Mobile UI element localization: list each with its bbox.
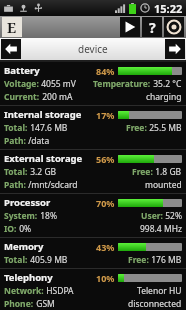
button[interactable]: Battery bbox=[0, 62, 186, 105]
staticText: 10% bbox=[96, 272, 115, 284]
staticText: 405.9 MB bbox=[28, 254, 68, 266]
staticText: Phone: bbox=[4, 298, 34, 308]
staticText: /mnt/sdcard bbox=[26, 179, 78, 191]
button[interactable]: Record bbox=[164, 17, 184, 37]
staticText: 17% bbox=[96, 109, 115, 121]
button[interactable]: Play bbox=[120, 17, 140, 37]
staticText: Total: bbox=[4, 166, 28, 178]
button[interactable]: Internal storage bbox=[0, 106, 186, 149]
button[interactable]: Processor bbox=[0, 194, 186, 237]
staticText: IO: bbox=[4, 223, 17, 235]
staticText: 18% bbox=[38, 210, 57, 222]
staticText: External storage bbox=[4, 152, 83, 165]
staticText: Battery bbox=[4, 64, 40, 77]
staticText: User: bbox=[141, 210, 163, 222]
staticText: Memory bbox=[4, 240, 44, 253]
staticText: 84% bbox=[96, 65, 115, 77]
staticText: Processor bbox=[4, 196, 51, 209]
staticText: 147.6 MB bbox=[28, 122, 68, 134]
staticText: Current: bbox=[4, 91, 40, 103]
staticText: disconnected bbox=[128, 298, 182, 308]
button[interactable]: Memory bbox=[0, 238, 186, 268]
staticText: 25.5 MB bbox=[147, 122, 182, 134]
staticText: Telenor HU bbox=[137, 285, 182, 297]
staticText: /data bbox=[26, 135, 50, 147]
staticText: charging bbox=[146, 91, 182, 103]
staticText: device bbox=[78, 42, 108, 56]
staticText: Free: bbox=[126, 122, 147, 134]
staticText: 70% bbox=[96, 197, 115, 209]
staticText: Total: bbox=[4, 254, 28, 266]
staticText: GSM bbox=[34, 298, 55, 308]
button[interactable]: Previous bbox=[1, 39, 21, 59]
button[interactable]: Next bbox=[165, 39, 185, 59]
staticText: mounted bbox=[145, 179, 182, 191]
staticText: 200 mA bbox=[40, 91, 73, 103]
staticText: Temperature: bbox=[93, 78, 151, 90]
staticText: Path: bbox=[4, 135, 26, 147]
staticText: 3.2 GB bbox=[28, 166, 57, 178]
staticText: 35.2 °C bbox=[151, 78, 182, 90]
staticText: Total: bbox=[4, 122, 28, 134]
staticText: 1.8 GB bbox=[153, 166, 182, 178]
button[interactable]: Telephony bbox=[0, 269, 186, 310]
staticText: 15:22 bbox=[154, 1, 183, 16]
staticText: Telephony bbox=[4, 271, 53, 284]
button[interactable]: Elixir menu bbox=[2, 17, 22, 37]
staticText: 52% bbox=[163, 210, 182, 222]
staticText: Free: bbox=[128, 254, 149, 266]
button[interactable]: External storage bbox=[0, 150, 186, 193]
staticText: E bbox=[7, 18, 17, 37]
staticText: 56% bbox=[96, 153, 115, 165]
button[interactable]: Help bbox=[142, 17, 162, 37]
staticText: 4055 mV bbox=[39, 78, 76, 90]
staticText: System: bbox=[4, 210, 38, 222]
staticText: Free: bbox=[132, 166, 153, 178]
staticText: Path: bbox=[4, 179, 26, 191]
staticText: HSDPA bbox=[44, 285, 74, 297]
staticText: Network: bbox=[4, 285, 44, 297]
staticText: 176 MB bbox=[149, 254, 182, 266]
staticText: Voltage: bbox=[4, 78, 39, 90]
staticText: 0% bbox=[17, 223, 32, 235]
staticText: 43% bbox=[96, 241, 115, 253]
staticText: Internal storage bbox=[4, 108, 82, 121]
staticText: 998.4 MHz bbox=[140, 223, 182, 235]
staticText: ? bbox=[149, 18, 156, 37]
